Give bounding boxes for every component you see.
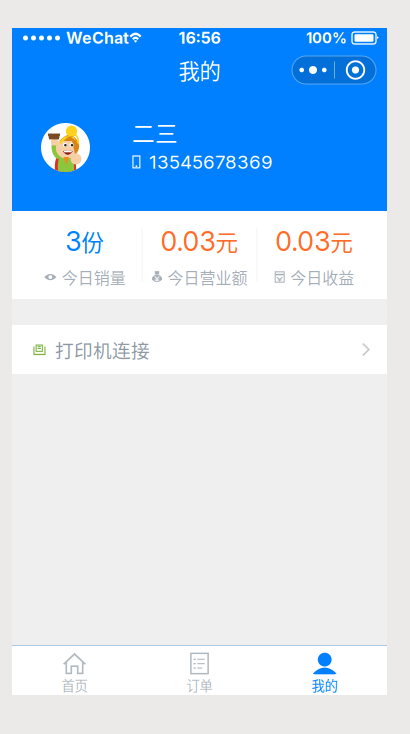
- staticText: WeChat: [66, 28, 129, 48]
- staticText: 100%: [306, 29, 347, 47]
- button[interactable]: 打印机连接: [12, 325, 387, 374]
- staticText: 今日销量: [62, 265, 126, 289]
- staticText: 份: [81, 225, 104, 257]
- staticText: 我的: [311, 675, 337, 695]
- staticText: 今日营业额: [167, 265, 247, 289]
- staticText: 二三: [132, 116, 178, 148]
- staticText: 我的: [178, 55, 220, 85]
- staticText: 元: [330, 225, 353, 257]
- staticText: 订单: [186, 675, 212, 695]
- staticText: 0.03: [160, 225, 215, 257]
- button[interactable]: 我的: [262, 646, 387, 695]
- staticText: 0.03: [275, 225, 330, 257]
- button[interactable]: 订单: [137, 646, 262, 695]
- button[interactable]: Mini Program menu: [292, 56, 376, 84]
- staticText: 今日收益: [290, 265, 354, 289]
- button[interactable]: 首页: [12, 646, 137, 695]
- staticText: 3: [65, 225, 81, 257]
- staticText: 首页: [61, 675, 87, 695]
- staticText: 13545678369: [149, 151, 273, 173]
- staticText: 16:56: [178, 28, 220, 48]
- staticText: 打印机连接: [55, 336, 150, 363]
- staticText: 元: [215, 225, 238, 257]
